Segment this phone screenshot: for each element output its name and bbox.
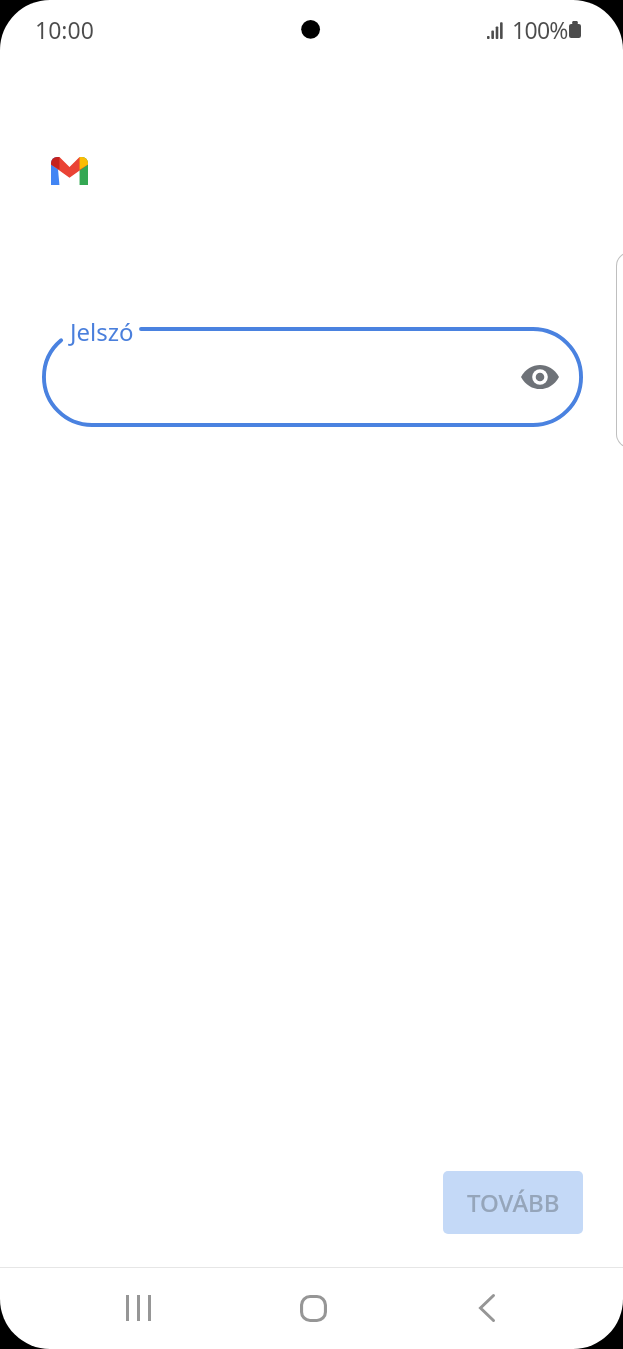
button[interactable]: Back xyxy=(429,1271,545,1345)
button[interactable]: TOVÁBB xyxy=(443,1171,583,1234)
button[interactable]: Show password xyxy=(510,347,570,407)
staticText: Jelszó xyxy=(70,315,134,348)
staticText: TOVÁBB xyxy=(467,1186,560,1219)
button[interactable]: Recent apps xyxy=(80,1271,196,1345)
button[interactable]: Home xyxy=(255,1271,371,1345)
button[interactable]: Jelszó xyxy=(42,327,583,427)
staticText: 100% xyxy=(512,14,568,45)
staticText: 10:00 xyxy=(35,14,94,45)
